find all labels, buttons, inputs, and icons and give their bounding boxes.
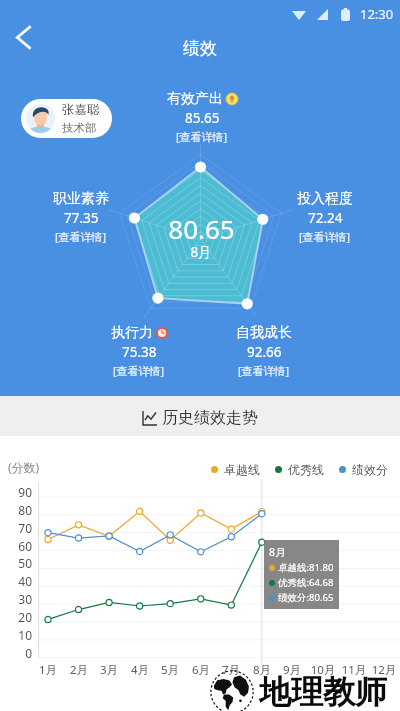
staticText: 11月 [337,662,371,678]
button[interactable]: 执行力 [83,324,195,378]
staticText: 1月 [31,662,65,678]
staticText: [查看详情] [238,363,290,378]
staticText: 6月 [184,662,218,678]
staticText: 80 [6,502,32,518]
staticText: 职业素养 [53,190,109,208]
staticText: 卓越线:81.80 [278,561,334,574]
staticText: 50 [6,555,32,571]
staticText: 投入程度 [297,190,353,208]
staticText: [查看详情] [176,129,228,144]
staticText: 卓越线 [224,462,260,477]
staticText: 绩效分:80.65 [278,591,334,604]
button[interactable]: 优秀线 [275,462,324,477]
staticText: 10月 [306,662,340,678]
staticText: 92.66 [247,343,282,361]
staticText: 12月 [367,662,400,678]
staticText: 8月 [245,662,279,678]
staticText: 30 [6,591,32,607]
staticText: 10 [6,627,32,643]
staticText: 70 [6,520,32,536]
button[interactable]: 自我成长 [208,324,320,378]
staticText: 75.38 [122,343,157,361]
staticText: 4月 [123,662,157,678]
button[interactable]: 绩效分 [339,462,388,477]
button[interactable]: Back [2,15,46,59]
staticText: 2月 [62,662,96,678]
staticText: 张嘉聪 [62,102,100,118]
staticText: 执行力 [111,324,153,342]
staticText: 自我成长 [236,324,292,342]
staticText: 40 [6,573,32,589]
staticText: 5月 [153,662,187,678]
staticText: 8月 [190,243,212,261]
staticText: (分数) [8,459,40,475]
staticText: 72.24 [308,209,343,227]
button[interactable]: 有效产出 [146,90,258,144]
staticText: 9月 [275,662,309,678]
staticText: 绩效分 [352,462,388,477]
staticText: 地理教师 [259,672,387,711]
staticText: 技术部 [62,121,97,135]
button[interactable]: 投入程度 [269,190,381,244]
button[interactable]: 历史绩效走势 [0,399,400,437]
staticText: 8月 [269,545,286,559]
staticText: 80.65 [168,211,235,246]
staticText: 绩效 [183,38,217,59]
staticText: 60 [6,538,32,554]
staticText: 7月 [214,662,248,678]
staticText: [查看详情] [55,229,107,244]
staticText: 85.65 [185,109,220,127]
staticText: 3月 [92,662,126,678]
staticText: 20 [6,609,32,625]
staticText: 77.35 [64,209,99,227]
staticText: 12:30 [360,5,394,23]
staticText: 历史绩效走势 [162,408,258,428]
staticText: 0 [6,645,32,661]
staticText: 有效产出 [167,90,223,108]
button[interactable]: 职业素养 [25,190,137,244]
button[interactable]: 卓越线 [211,462,260,477]
staticText: 90 [6,484,32,500]
staticText: [查看详情] [113,363,165,378]
button[interactable]: 张嘉聪 [21,99,112,138]
staticText: 优秀线:64.68 [278,576,334,589]
staticText: 优秀线 [288,462,324,477]
staticText: [查看详情] [299,229,351,244]
